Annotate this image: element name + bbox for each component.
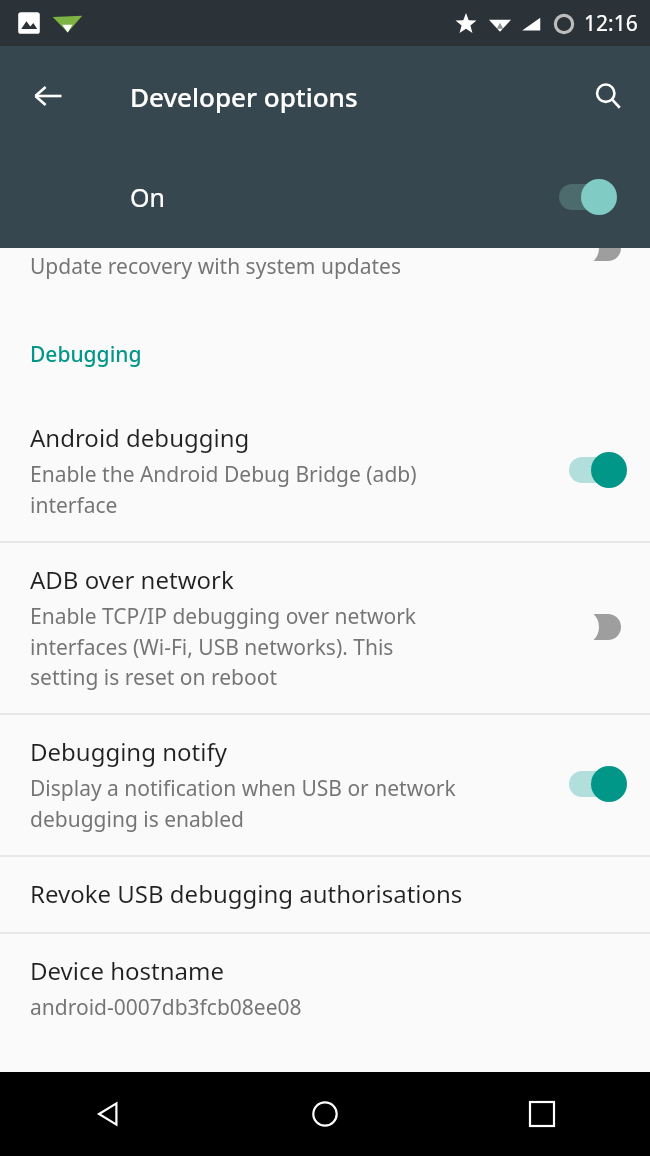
- button[interactable]: Android debugging: [0, 401, 650, 541]
- button[interactable]: Device hostname: [0, 934, 650, 1044]
- button[interactable]: ADB over network: [0, 543, 650, 713]
- button[interactable]: Revoke USB debugging authorisations: [0, 857, 650, 932]
- staticText: 12:16: [584, 9, 638, 38]
- staticText: Display a notification when USB or netwo…: [30, 774, 456, 833]
- staticText: Revoke USB debugging authorisations: [30, 877, 463, 910]
- button[interactable]: Back: [78, 1084, 138, 1144]
- button[interactable]: On: [0, 146, 650, 248]
- button[interactable]: Home: [295, 1084, 355, 1144]
- button[interactable]: Update recovery with system updates: [0, 248, 650, 298]
- staticText: Debugging: [30, 340, 142, 369]
- staticText: android-0007db3fcb08ee08: [30, 993, 302, 1022]
- staticText: Device hostname: [30, 954, 225, 987]
- button[interactable]: Search: [580, 68, 636, 124]
- staticText: Developer options: [130, 79, 358, 114]
- staticText: On: [130, 180, 165, 214]
- staticText: Debugging notify: [30, 735, 227, 768]
- staticText: Enable TCP/IP debugging over network int…: [30, 602, 417, 691]
- button[interactable]: Debugging notify: [0, 715, 650, 855]
- button[interactable]: Back: [20, 68, 76, 124]
- staticText: Android debugging: [30, 421, 250, 454]
- staticText: Enable the Android Debug Bridge (adb) in…: [30, 460, 417, 519]
- staticText: ADB over network: [30, 563, 234, 596]
- staticText: Update recovery with system updates: [30, 252, 402, 281]
- button[interactable]: Recents: [512, 1084, 572, 1144]
